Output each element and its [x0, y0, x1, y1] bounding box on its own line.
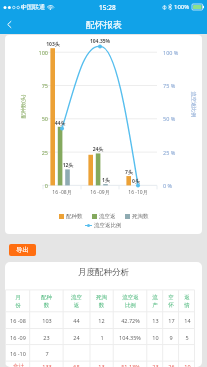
staticText: 75 %: [163, 82, 176, 89]
staticText: 死淘 数: [96, 294, 107, 309]
staticText: 100 %: [163, 49, 179, 56]
staticText: 25: [36, 149, 48, 156]
staticText: 0头: [127, 178, 145, 185]
staticText: 13: [98, 363, 105, 367]
staticText: 16 -08月: [43, 189, 81, 196]
staticText: 10: [152, 334, 159, 341]
staticText: 16 -09月: [81, 189, 119, 196]
staticText: 133: [42, 363, 52, 367]
staticText: 月度配种分析: [78, 267, 129, 278]
staticText: 23: [43, 334, 50, 341]
staticText: 9: [169, 334, 173, 341]
staticText: 103: [42, 317, 52, 324]
staticText: 流空返比例: [184, 84, 191, 134]
staticText: 12头: [59, 162, 77, 169]
staticText: 流空返 比例: [122, 294, 139, 309]
staticText: 13: [152, 317, 159, 324]
staticText: 流空 返: [71, 294, 82, 309]
staticText: 16 -08: [10, 317, 26, 324]
staticText: 23: [152, 363, 159, 367]
staticText: 16 -09: [10, 334, 26, 341]
staticText: 26: [168, 363, 175, 367]
staticText: 1头: [97, 177, 115, 184]
staticText: 0: [36, 182, 48, 189]
staticText: 导出: [16, 246, 29, 254]
staticText: 配种数: [66, 213, 83, 220]
button[interactable]: 导出: [9, 244, 36, 256]
staticText: 100%: [174, 3, 190, 11]
staticText: 50: [36, 115, 48, 122]
staticText: 104.35%: [119, 334, 141, 341]
staticText: 14: [184, 317, 191, 324]
staticText: 合计: [13, 363, 24, 367]
staticText: 50 %: [163, 115, 176, 122]
staticText: 100: [36, 49, 48, 56]
staticText: 75: [36, 82, 48, 89]
staticText: 44: [73, 317, 80, 324]
staticText: 空 怀: [168, 294, 174, 309]
staticText: 返 情: [184, 294, 190, 309]
staticText: 流 产: [152, 294, 158, 309]
staticText: 25 %: [163, 149, 176, 156]
staticText: 103头: [44, 41, 62, 48]
staticText: 17: [168, 317, 175, 324]
staticText: 19: [184, 363, 191, 367]
staticText: 0 %: [163, 182, 173, 189]
staticText: 死淘数: [132, 213, 149, 220]
staticText: 配种 数: [41, 294, 52, 309]
staticText: 流空返: [99, 213, 116, 220]
staticText: 16 -10月: [119, 189, 157, 196]
staticText: 月 份: [15, 294, 21, 309]
staticText: 24: [73, 334, 80, 341]
staticText: 1: [100, 334, 104, 341]
staticText: 7: [45, 350, 49, 357]
staticText: 7头: [120, 169, 138, 176]
staticText: 16 -10: [10, 350, 26, 357]
staticText: 68: [73, 363, 80, 367]
staticText: 44头: [51, 120, 69, 127]
staticText: 流空返比例: [94, 222, 122, 229]
staticText: 42.72%: [121, 317, 140, 324]
staticText: 配怀报表: [86, 19, 122, 30]
staticText: 12: [98, 317, 105, 324]
staticText: 104.35%: [88, 38, 112, 45]
staticText: 24头: [89, 146, 107, 153]
staticText: 15:28: [99, 3, 116, 12]
button[interactable]: Back: [0, 15, 18, 33]
staticText: 51.13%: [121, 363, 140, 367]
staticText: 5: [185, 334, 189, 341]
staticText: 中国联通: [21, 3, 45, 11]
